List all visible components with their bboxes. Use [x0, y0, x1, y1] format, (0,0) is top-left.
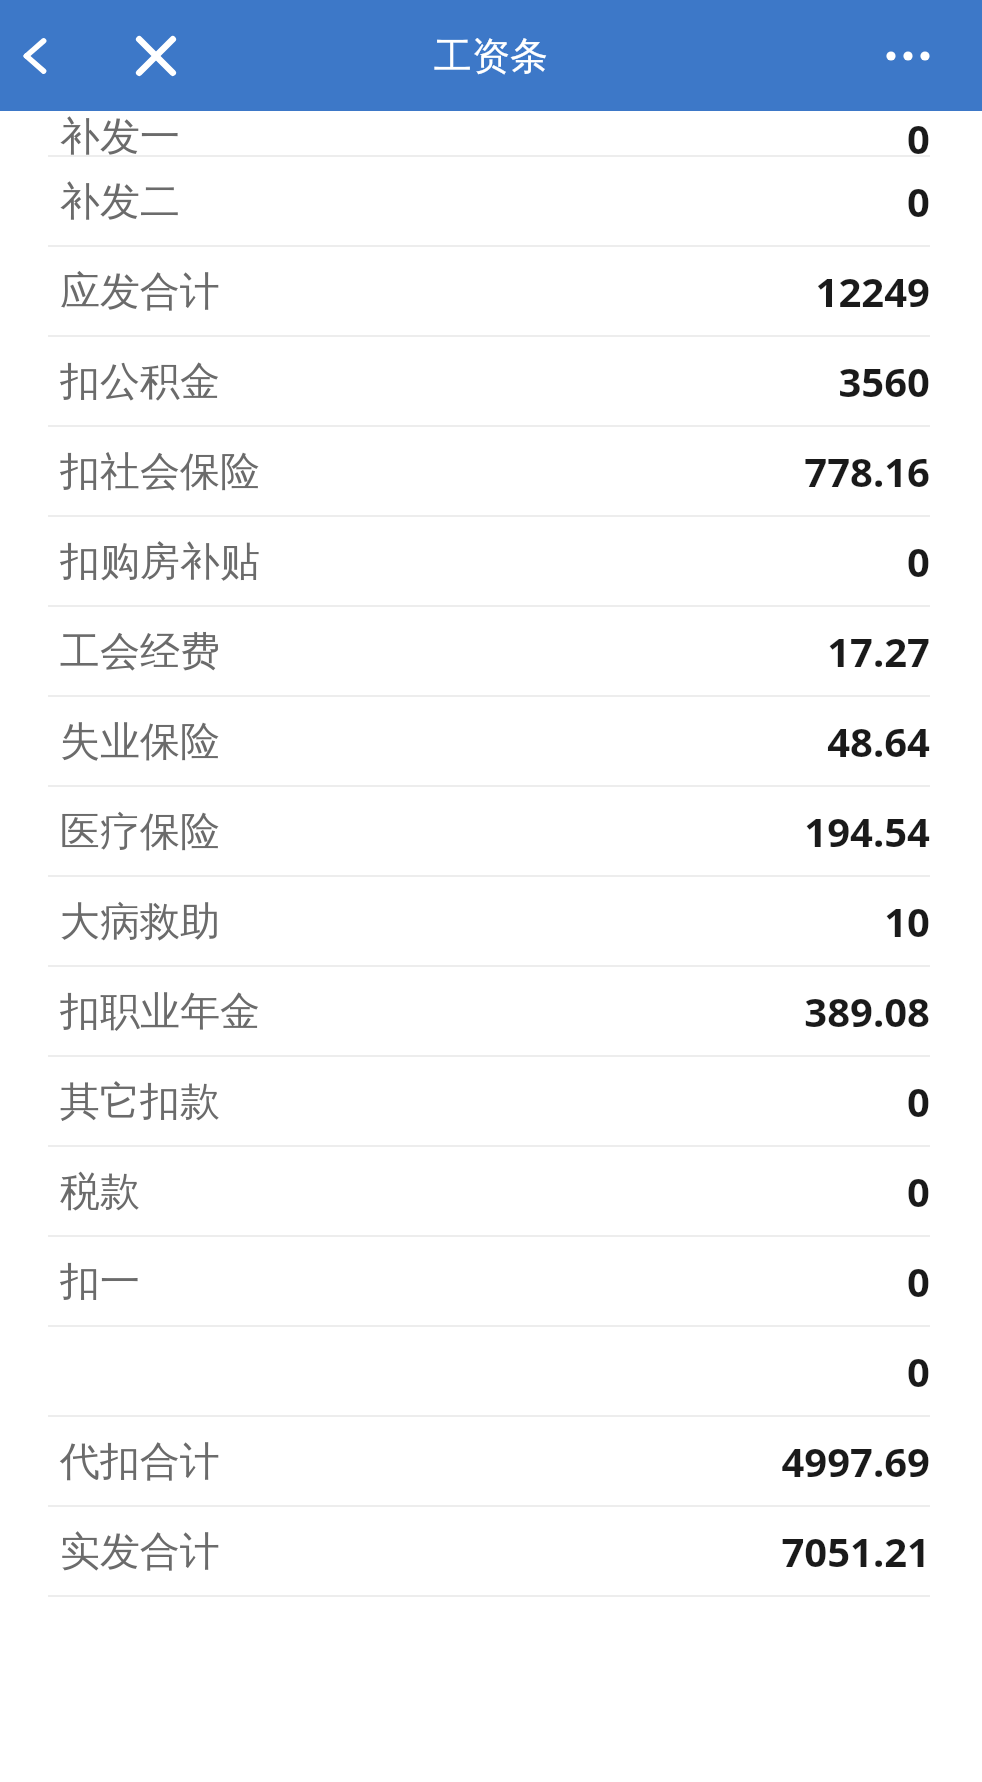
- staticText: 0: [907, 111, 930, 155]
- button[interactable]: 失业保险: [0, 697, 982, 787]
- staticText: 其它扣款: [60, 1076, 220, 1126]
- button[interactable]: Close: [120, 20, 192, 92]
- button[interactable]: 扣购房补贴: [0, 517, 982, 607]
- staticText: 0: [907, 1164, 930, 1218]
- staticText: 0: [907, 1344, 930, 1398]
- staticText: 扣社会保险: [60, 446, 260, 496]
- button[interactable]: 扣社会保险: [0, 427, 982, 517]
- staticText: 应发合计: [60, 266, 220, 316]
- staticText: 大病救助: [60, 896, 220, 946]
- staticText: 10: [884, 894, 930, 948]
- staticText: 实发合计: [60, 1526, 220, 1576]
- staticText: 扣职业年金: [60, 986, 260, 1036]
- staticText: 扣一: [60, 1256, 140, 1306]
- staticText: 补发一: [60, 111, 180, 155]
- button[interactable]: 扣职业年金: [0, 967, 982, 1057]
- button[interactable]: 代扣合计: [0, 1417, 982, 1507]
- button[interactable]: 补发二: [0, 157, 982, 247]
- button[interactable]: 大病救助: [0, 877, 982, 967]
- staticText: 扣公积金: [60, 356, 220, 406]
- staticText: 0: [907, 1254, 930, 1308]
- button[interactable]: 应发合计: [0, 247, 982, 337]
- staticText: 4997.69: [781, 1434, 930, 1488]
- button[interactable]: 补发一: [0, 111, 982, 157]
- staticText: 0: [907, 174, 930, 228]
- button[interactable]: 0: [0, 1327, 982, 1417]
- button[interactable]: 税款: [0, 1147, 982, 1237]
- staticText: 48.64: [827, 714, 930, 768]
- staticText: 3560: [838, 354, 930, 408]
- staticText: 194.54: [804, 804, 930, 858]
- button[interactable]: More options: [870, 18, 946, 94]
- staticText: 代扣合计: [60, 1436, 220, 1486]
- button[interactable]: 扣公积金: [0, 337, 982, 427]
- staticText: 工资条: [434, 32, 548, 80]
- staticText: 医疗保险: [60, 806, 220, 856]
- staticText: 工会经费: [60, 626, 220, 676]
- button[interactable]: Back: [2, 23, 68, 89]
- staticText: 778.16: [804, 444, 930, 498]
- button[interactable]: 工会经费: [0, 607, 982, 697]
- staticText: 0: [907, 1074, 930, 1128]
- staticText: 税款: [60, 1166, 140, 1216]
- staticText: 扣购房补贴: [60, 536, 260, 586]
- button[interactable]: 实发合计: [0, 1507, 982, 1597]
- staticText: 17.27: [827, 624, 930, 678]
- staticText: 补发二: [60, 176, 180, 226]
- button[interactable]: 扣一: [0, 1237, 982, 1327]
- staticText: 389.08: [804, 984, 930, 1038]
- staticText: 12249: [815, 264, 930, 318]
- staticText: 0: [907, 534, 930, 588]
- button[interactable]: 其它扣款: [0, 1057, 982, 1147]
- staticText: 失业保险: [60, 716, 220, 766]
- button[interactable]: 医疗保险: [0, 787, 982, 877]
- staticText: 7051.21: [781, 1524, 930, 1578]
